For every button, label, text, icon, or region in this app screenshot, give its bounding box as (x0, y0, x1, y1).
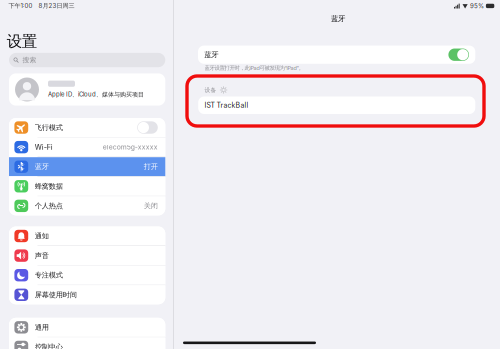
staticText: 飞行模式 (35, 123, 63, 132)
staticText: 专注模式 (35, 271, 63, 280)
staticText: 蓝牙 (331, 14, 345, 23)
button[interactable]: 通用 (9, 318, 165, 337)
staticText: 蓝牙 (35, 162, 49, 171)
button[interactable]: 通知 (9, 226, 165, 245)
button[interactable]: 专注模式 (9, 266, 165, 285)
staticText: 关闭 (144, 201, 158, 210)
staticText: 蓝牙设置打开时，此iPad可被发现为“iPad”。 (205, 64, 304, 71)
button[interactable]: 蓝牙 (9, 157, 165, 176)
staticText: 95% (470, 2, 484, 10)
staticText: 控制中心 (35, 342, 63, 349)
staticText: 声音 (35, 251, 49, 260)
button[interactable]: 蓝牙 (198, 46, 475, 64)
staticText: 屏幕使用时间 (35, 290, 77, 299)
staticText: 蓝牙 (204, 50, 218, 59)
button[interactable]: 控制中心 (9, 337, 165, 349)
staticText: 设置 (7, 32, 37, 51)
staticText: 通知 (35, 231, 49, 241)
staticText: 搜索 (23, 56, 37, 64)
button[interactable]: 蜂窝数据 (9, 177, 165, 196)
staticText: 通用 (35, 323, 49, 332)
button[interactable]: Wi-Fi (9, 138, 165, 157)
staticText: 个人热点 (35, 201, 63, 210)
staticText: 蜂窝数据 (35, 182, 63, 191)
staticText: 下午1:00 8月23日周三 (8, 2, 74, 9)
staticText: 打开 (144, 162, 158, 171)
button[interactable]: IST TrackBall (198, 96, 475, 114)
button[interactable]: Apple ID、iCloud、媒体与购买项目 (9, 73, 165, 106)
button[interactable]: 声音 (9, 246, 165, 265)
staticText: IST TrackBall (204, 101, 248, 109)
staticText: elecom5g-xxxxx (103, 143, 158, 151)
button[interactable]: 飞行模式 (9, 118, 165, 137)
staticText: 设备 (204, 86, 216, 94)
staticText: Wi-Fi (35, 143, 53, 151)
button[interactable]: 搜索 (9, 53, 165, 67)
button[interactable]: 屏幕使用时间 (9, 285, 165, 304)
staticText: Apple ID、iCloud、媒体与购买项目 (48, 91, 144, 98)
button[interactable]: 个人热点 (9, 196, 165, 215)
